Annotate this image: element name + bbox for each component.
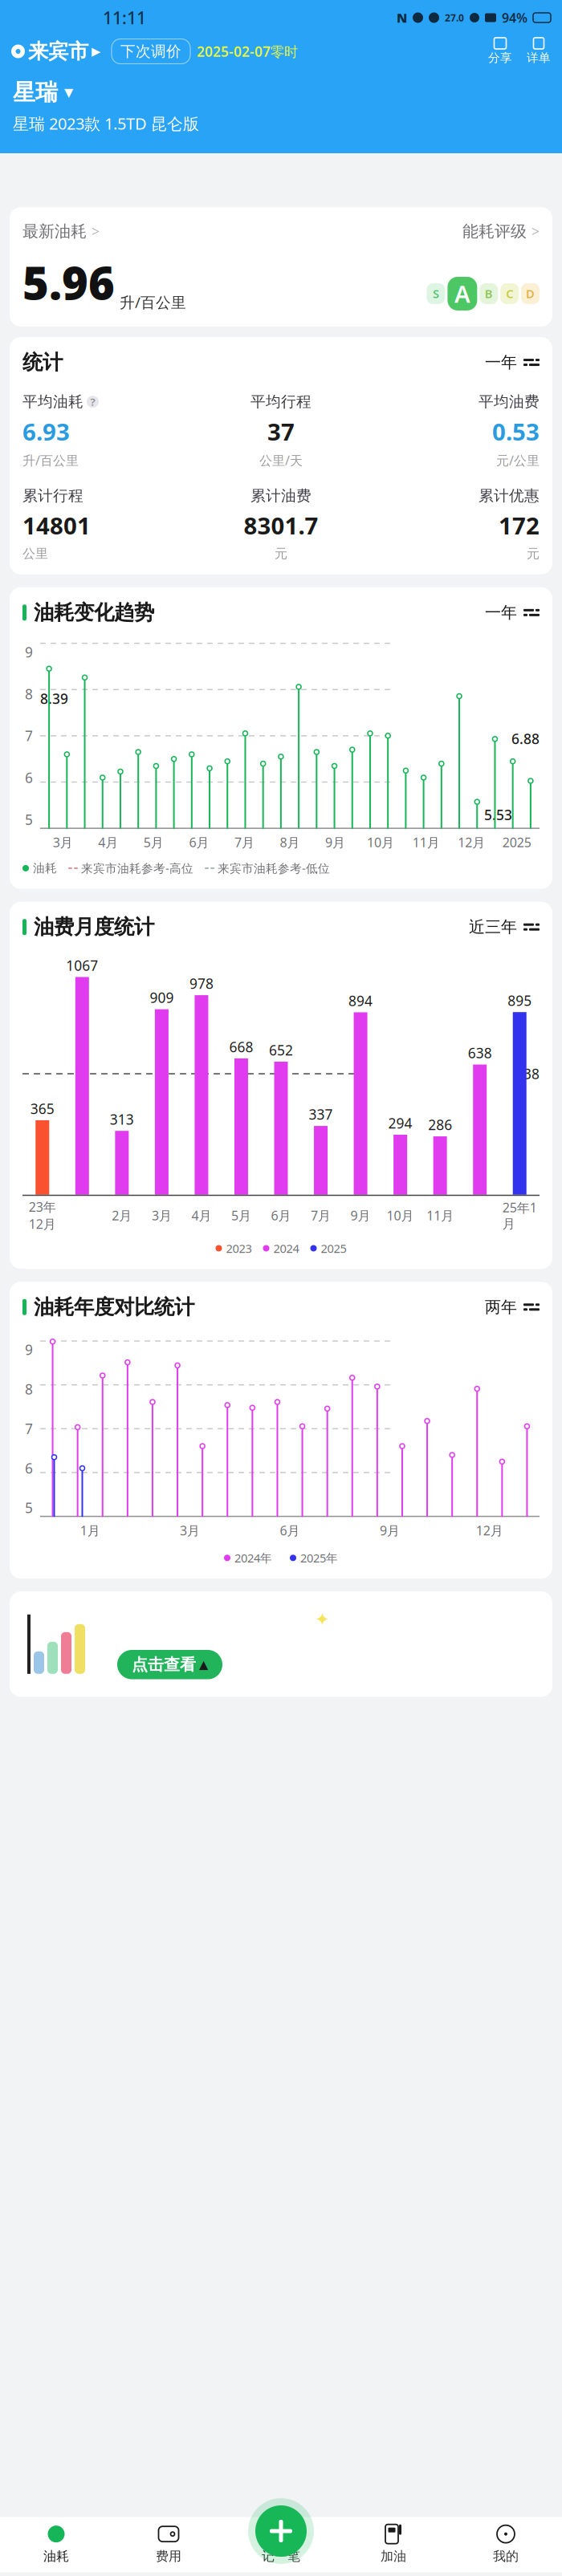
staticText: 来宾市油耗参考-高位 xyxy=(81,860,193,876)
staticText: 公里 xyxy=(22,546,48,562)
staticText: 8301.7 xyxy=(244,510,318,541)
staticText: 平均行程 xyxy=(250,392,312,411)
button[interactable]: 两年 xyxy=(485,1297,540,1317)
staticText: 286 xyxy=(428,1115,452,1134)
staticText: 2025 xyxy=(502,834,531,851)
staticText: 11月 xyxy=(426,1207,454,1224)
staticText: 升/百公里 xyxy=(22,452,79,469)
staticText: 172 xyxy=(499,510,540,541)
staticText: 37 xyxy=(267,416,295,447)
button[interactable]: 费用 xyxy=(112,2517,225,2572)
button[interactable]: 记一笔 xyxy=(248,2498,314,2564)
staticText: 下次调价 xyxy=(120,42,181,61)
staticText: 1067 xyxy=(66,956,98,975)
staticText: 5月 xyxy=(144,834,164,851)
staticText: C xyxy=(506,286,513,301)
staticText: 2024 xyxy=(273,1240,299,1256)
staticText: 7 xyxy=(25,727,33,745)
staticText: 9 xyxy=(25,1340,33,1359)
staticText: 294 xyxy=(388,1114,412,1132)
staticText: 978 xyxy=(189,974,213,993)
staticText: 6 xyxy=(25,1459,33,1477)
staticText: 895 xyxy=(508,991,532,1010)
staticText: 638 xyxy=(515,1065,540,1083)
staticText: 元 xyxy=(527,546,540,562)
staticText: N xyxy=(397,9,407,26)
staticText: 元 xyxy=(275,546,287,562)
button[interactable]: 加油 xyxy=(337,2517,450,2572)
staticText: 3月 xyxy=(53,834,73,851)
button[interactable]: 记一笔 xyxy=(225,2517,337,2572)
staticText: 365 xyxy=(30,1099,54,1118)
staticText: 12月 xyxy=(476,1522,503,1539)
button[interactable]: 星瑞 xyxy=(13,79,73,106)
staticText: 加油 xyxy=(381,2548,406,2564)
staticText: 平均油耗 xyxy=(22,392,83,411)
staticText: 累计油费 xyxy=(250,486,312,505)
staticText: 油耗变化趋势 xyxy=(34,600,154,625)
staticText: 2025年 xyxy=(300,1550,338,1566)
button[interactable]: 一年 xyxy=(485,603,540,622)
button[interactable]: 最新油耗 xyxy=(22,221,100,241)
staticText: 14801 xyxy=(22,510,91,541)
button[interactable]: 能耗评级 xyxy=(462,221,540,241)
staticText: > xyxy=(531,222,540,241)
staticText: 7 xyxy=(25,1419,33,1438)
staticText: 来宾市油耗参考-低位 xyxy=(218,860,330,876)
staticText: 652 xyxy=(269,1041,293,1059)
button[interactable]: 油耗 xyxy=(0,2517,112,2572)
staticText: 1月 xyxy=(80,1522,100,1539)
staticText: 平均油费 xyxy=(479,392,540,411)
staticText: 5.96 xyxy=(22,252,115,312)
staticText: 油耗 xyxy=(33,861,57,875)
staticText: 元/公里 xyxy=(496,452,540,469)
staticText: 油费月度统计 xyxy=(34,915,154,939)
button[interactable]: 更多详细统计报告 xyxy=(0,1591,562,1697)
staticText: 两年 xyxy=(485,1297,517,1317)
staticText: ? xyxy=(90,395,95,409)
button[interactable]: 下次调价 xyxy=(112,39,190,64)
staticText: 费用 xyxy=(156,2548,181,2564)
staticText: 9月 xyxy=(351,1207,371,1224)
staticText: 12月 xyxy=(458,834,485,851)
staticText: 3月 xyxy=(180,1522,200,1539)
button[interactable]: 我的 xyxy=(450,2517,562,2572)
button[interactable]: 详单 xyxy=(527,38,551,65)
button[interactable]: 一年 xyxy=(485,353,540,372)
staticText: ▼ xyxy=(64,86,73,99)
button[interactable]: 分享 xyxy=(488,38,512,65)
staticText: 分享 xyxy=(488,51,512,65)
staticText: ▲ xyxy=(199,1658,208,1671)
staticText: 3月 xyxy=(152,1207,172,1224)
staticText: 7月 xyxy=(311,1207,331,1224)
staticText: 4月 xyxy=(98,834,118,851)
staticText: 一年 xyxy=(485,603,517,622)
staticText: 25年1月 xyxy=(502,1199,537,1232)
staticText: 记一笔 xyxy=(262,2548,300,2564)
staticText: 337 xyxy=(309,1105,333,1123)
staticText: 313 xyxy=(110,1110,134,1128)
staticText: 2023 xyxy=(226,1240,252,1256)
staticText: S xyxy=(433,286,439,301)
staticText: 6月 xyxy=(271,1207,291,1224)
staticText: 来宾市 xyxy=(28,39,88,64)
staticText: 23年12月 xyxy=(29,1198,56,1232)
staticText: > xyxy=(92,222,100,241)
staticText: 638 xyxy=(468,1044,492,1062)
button[interactable]: 来宾市 xyxy=(11,39,100,64)
staticText: 公里/天 xyxy=(259,452,303,469)
staticText: 一年 xyxy=(485,353,517,372)
staticText: B xyxy=(485,286,493,301)
staticText: 10月 xyxy=(367,834,394,851)
staticText: 累计优惠 xyxy=(479,486,540,505)
staticText: ▶ xyxy=(92,45,100,58)
staticText: 6.88 xyxy=(511,729,540,748)
button[interactable]: 近三年 xyxy=(469,917,540,937)
staticText: 2025-02-07零时 xyxy=(197,42,298,61)
staticText: 能耗评级 xyxy=(462,221,527,241)
staticText: 11:11 xyxy=(103,6,146,29)
staticText: 6月 xyxy=(280,1522,300,1539)
staticText: 我的 xyxy=(493,2548,519,2564)
staticText: ✦ xyxy=(315,1609,330,1630)
staticText: 9月 xyxy=(380,1522,400,1539)
